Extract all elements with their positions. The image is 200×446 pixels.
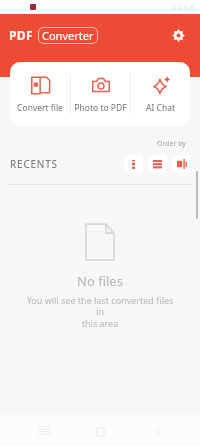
button[interactable]: AI Chat — [131, 62, 190, 126]
staticText: AI Chat — [146, 102, 175, 114]
button[interactable]: Convert file — [10, 62, 70, 126]
button[interactable]: Photo to PDF — [71, 62, 130, 126]
button[interactable]: Settings — [165, 22, 191, 48]
staticText: PDF — [9, 27, 34, 43]
staticText: Convert file — [17, 102, 63, 114]
button[interactable]: Grid view — [172, 155, 191, 173]
staticText: No files — [77, 272, 123, 290]
staticText: Photo to PDF — [74, 102, 127, 114]
button[interactable]: List density — [148, 155, 167, 173]
staticText: Order by — [157, 139, 186, 149]
button[interactable]: Navigation — [31, 420, 57, 442]
staticText: You will see the last converted files in… — [24, 294, 176, 330]
staticText: RECENTS — [10, 157, 58, 171]
staticText: Converter — [42, 28, 94, 43]
button[interactable]: Sort order — [124, 155, 143, 173]
